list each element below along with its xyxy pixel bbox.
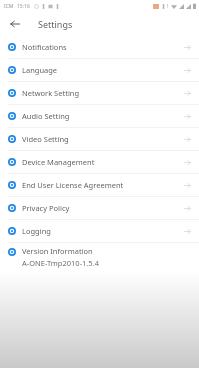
staticText: End User License Agreement: [22, 180, 184, 190]
button[interactable]: Privacy Policy: [0, 197, 199, 220]
staticText: Notifications: [22, 42, 184, 52]
staticText: Device Management: [22, 157, 184, 167]
staticText: !: [167, 3, 169, 9]
staticText: 15:16: [17, 3, 30, 10]
staticText: ICM: [4, 3, 14, 10]
staticText: Audio Setting: [22, 111, 184, 121]
other: Open: [184, 182, 191, 189]
staticText: Version Information: [22, 246, 93, 256]
other: Open: [184, 113, 191, 120]
button[interactable]: Network Setting: [0, 82, 199, 105]
staticText: Network Setting: [22, 88, 184, 98]
staticText: A-ONE-Tmp2010-1.5.4: [22, 258, 99, 268]
button[interactable]: Language: [0, 59, 199, 82]
staticText: Video Setting: [22, 134, 184, 144]
other: Open: [184, 67, 191, 74]
staticText: Settings: [38, 18, 73, 30]
staticText: Language: [22, 65, 184, 75]
other: Open: [184, 90, 191, 97]
button[interactable]: Version Information: [0, 243, 199, 271]
other: Open: [184, 159, 191, 166]
button[interactable]: Notifications: [0, 36, 199, 59]
staticText: Logging: [22, 226, 184, 236]
button[interactable]: Device Management: [0, 151, 199, 174]
button[interactable]: Audio Setting: [0, 105, 199, 128]
button[interactable]: Logging: [0, 220, 199, 243]
other: Open: [184, 136, 191, 143]
other: Open: [184, 205, 191, 212]
other: Open: [184, 44, 191, 51]
staticText: Privacy Policy: [22, 203, 184, 213]
other: Open: [184, 228, 191, 235]
button[interactable]: Video Setting: [0, 128, 199, 151]
button[interactable]: Back: [7, 16, 23, 32]
button[interactable]: End User License Agreement: [0, 174, 199, 197]
